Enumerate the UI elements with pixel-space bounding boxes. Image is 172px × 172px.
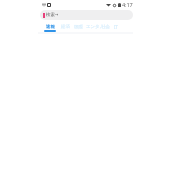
staticText: IT	[114, 24, 118, 30]
staticText: 経済	[61, 24, 70, 30]
button[interactable]: エンタメ	[86, 24, 101, 34]
button[interactable]: 経済	[59, 24, 72, 34]
staticText: 社会	[101, 24, 110, 30]
button[interactable]: 国際	[72, 24, 85, 34]
button[interactable]: IT	[111, 24, 120, 34]
staticText: 速報	[46, 24, 55, 30]
staticText: 4:17	[122, 1, 133, 9]
staticText: 検索→	[46, 12, 59, 18]
staticText: エンタメ	[86, 24, 101, 30]
staticText: 国際	[74, 24, 83, 30]
button[interactable]: 速報	[44, 24, 56, 34]
button[interactable]: 検索→	[40, 10, 133, 20]
button[interactable]: 社会	[100, 24, 111, 34]
